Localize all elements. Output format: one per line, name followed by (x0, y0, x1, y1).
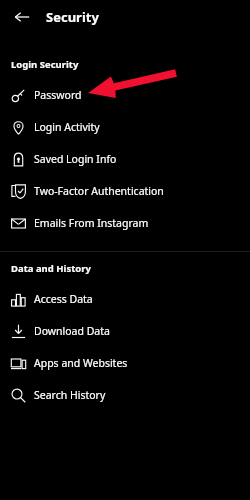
staticText: Download Data (34, 324, 110, 338)
staticText: Data and History (11, 262, 91, 275)
staticText: Apps and Websites (34, 356, 128, 370)
button[interactable]: Password (0, 79, 250, 111)
button[interactable]: Search History (0, 379, 250, 411)
staticText: Login Activity (34, 120, 100, 134)
button[interactable]: Saved Login Info (0, 143, 250, 175)
staticText: Two-Factor Authentication (34, 184, 164, 198)
staticText: Security (46, 8, 99, 26)
staticText: Emails From Instagram (34, 216, 149, 230)
button[interactable]: Download Data (0, 315, 250, 347)
staticText: Password (34, 88, 82, 102)
staticText: Access Data (34, 292, 93, 306)
button[interactable]: Apps and Websites (0, 347, 250, 379)
button[interactable]: Access Data (0, 283, 250, 315)
staticText: Login Security (11, 58, 79, 71)
staticText: Saved Login Info (34, 152, 117, 166)
button[interactable]: Emails From Instagram (0, 207, 250, 239)
staticText: Search History (34, 388, 106, 402)
button[interactable]: Login Activity (0, 111, 250, 143)
button[interactable]: Two-Factor Authentication (0, 175, 250, 207)
button[interactable]: Back (8, 3, 36, 31)
